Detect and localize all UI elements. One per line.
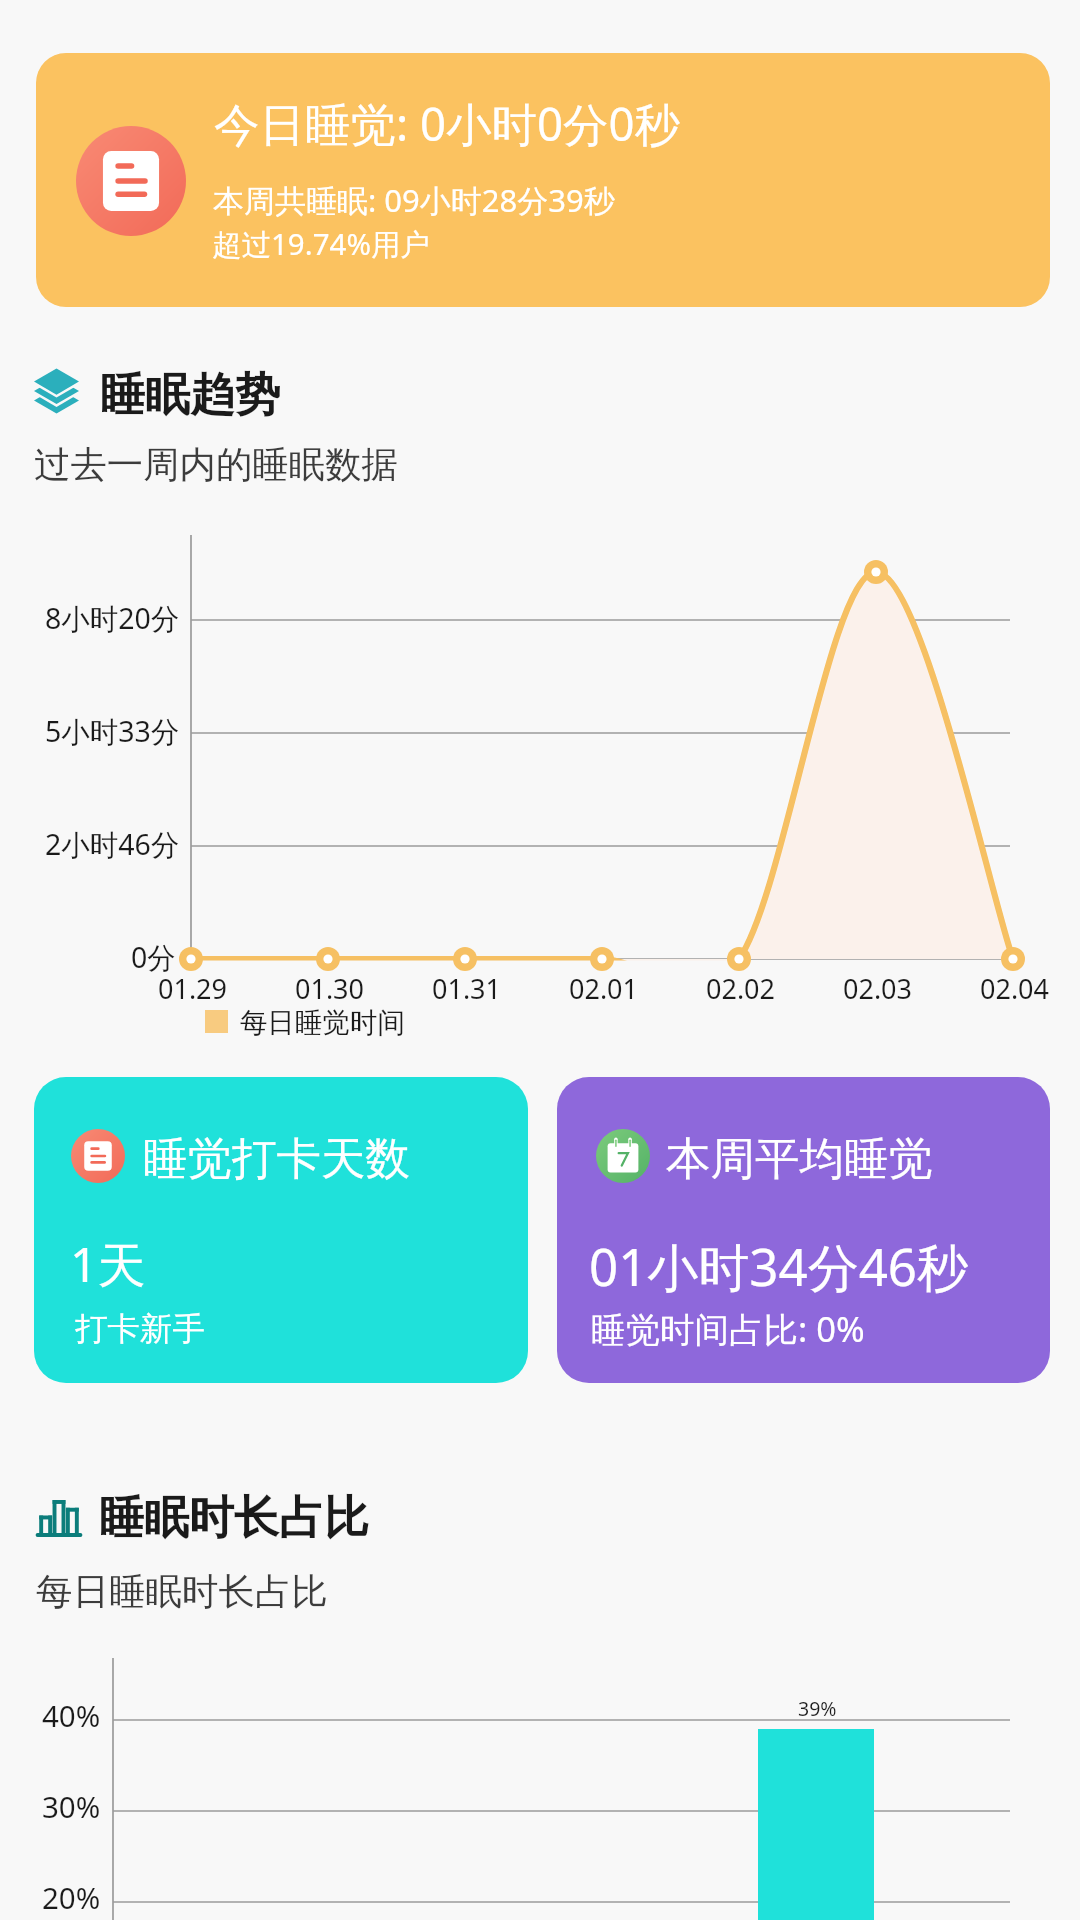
staticText: 02.03 [843,970,913,1007]
button[interactable]: 睡眠记录 [36,53,1050,307]
staticText: 40% [42,1695,101,1735]
staticText: 01.29 [158,970,228,1007]
button[interactable]: 打卡 [34,1077,528,1383]
other: 打卡 [71,1129,125,1183]
staticText: 睡觉时间占比: 0% [591,1305,865,1352]
staticText: 02.01 [569,970,639,1007]
staticText: 5小时33分 [45,712,180,751]
staticText: 每日睡眠时长占比 [36,1569,328,1615]
other: 睡眠趋势 [34,369,79,414]
staticText: 2小时46分 [45,825,180,864]
staticText: 1天 [70,1231,146,1297]
staticText: 0分 [131,938,176,977]
staticText: 30% [42,1786,101,1826]
staticText: 每日睡觉时间 [240,1006,405,1041]
other: 睡眠时长占比 [36,1494,82,1537]
staticText: 02.04 [980,970,1050,1007]
other: 睡眠记录 [76,126,186,236]
staticText: 01小时34分46秒 [589,1231,969,1301]
staticText: 8小时20分 [45,599,180,638]
staticText: 打卡新手 [75,1309,205,1350]
staticText: 02.02 [706,970,776,1007]
staticText: 超过19.74%用户 [212,223,430,263]
staticText: 今日睡觉: 0小时0分0秒 [214,92,681,154]
staticText: 睡眠趋势 [100,367,280,424]
staticText: 睡眠时长占比 [99,1490,369,1547]
other: 日历 [596,1129,650,1183]
staticText: 睡觉打卡天数 [143,1131,410,1187]
staticText: 本周共睡眠: 09小时28分39秒 [213,179,615,221]
button[interactable]: 日历 [557,1077,1050,1383]
staticText: 过去一周内的睡眠数据 [34,442,398,488]
staticText: 01.31 [432,970,502,1007]
staticText: 39% [798,1695,837,1722]
staticText: 01.30 [295,970,365,1007]
staticText: 20% [42,1877,101,1917]
staticText: 本周平均睡觉 [666,1131,933,1187]
